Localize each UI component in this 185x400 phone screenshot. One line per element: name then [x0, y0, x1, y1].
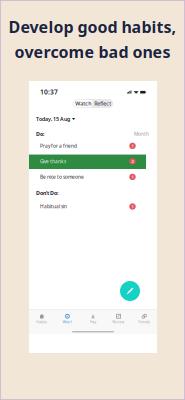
staticText: 2	[131, 158, 133, 164]
button[interactable]: Habits	[29, 312, 55, 325]
staticText: Review	[113, 319, 125, 324]
button[interactable]: Today, 15 Aug	[36, 115, 75, 123]
staticText: 1	[131, 143, 133, 149]
staticText: Do:	[36, 130, 44, 138]
button[interactable]: Be nice to someone	[29, 169, 157, 185]
button[interactable]: Habitual sin	[29, 199, 157, 214]
staticText: Habitual sin	[40, 203, 67, 210]
staticText: Give thanks	[40, 158, 66, 165]
button[interactable]: Month	[133, 130, 150, 138]
button[interactable]: Review	[106, 312, 131, 325]
staticText: 10:37	[40, 87, 58, 97]
staticText: Don't Do:	[36, 189, 58, 197]
button[interactable]: Reflect	[93, 100, 112, 107]
button[interactable]: Pray for a friend	[29, 138, 157, 154]
staticText: Watch	[75, 100, 91, 107]
staticText: Pray	[89, 319, 96, 324]
button[interactable]: Watch	[55, 312, 80, 325]
staticText: Watch	[62, 319, 72, 324]
button[interactable]: Friends	[131, 312, 157, 325]
staticText: Month	[134, 131, 149, 137]
button[interactable]: New entry	[120, 281, 140, 301]
staticText: Reflect	[94, 100, 111, 107]
staticText: Friends	[138, 319, 150, 324]
staticText: Habits	[36, 319, 47, 324]
staticText: Be nice to someone	[40, 174, 84, 180]
button[interactable]: Pray	[80, 312, 106, 325]
staticText: 1	[131, 174, 133, 180]
button[interactable]: Give thanks	[29, 154, 157, 169]
staticText: Pray for a friend	[40, 143, 77, 149]
staticText: 1	[131, 204, 133, 209]
staticText: Develop good habits,	[8, 16, 176, 38]
staticText: overcome bad ones	[14, 41, 170, 63]
button[interactable]: Watch	[73, 100, 93, 107]
staticText: Today, 15 Aug	[36, 115, 70, 123]
